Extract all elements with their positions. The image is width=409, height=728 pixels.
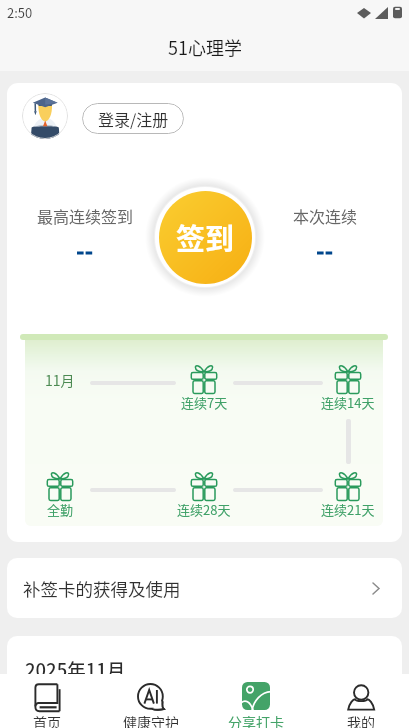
staticText: 首页 — [33, 712, 61, 728]
staticText: 连续28天 — [177, 500, 231, 519]
staticText: 登录/注册 — [98, 107, 169, 130]
staticText: 51心理学 — [168, 34, 242, 60]
button[interactable]: 连续7天 — [151, 360, 257, 412]
button[interactable]: 登录/注册 — [82, 103, 184, 134]
button[interactable]: 分享打卡 — [218, 674, 294, 728]
button[interactable]: 用户头像 — [22, 93, 68, 139]
staticText: 分享打卡 — [228, 712, 284, 728]
staticText: 连续21天 — [321, 500, 375, 519]
button[interactable]: 健康守护 — [113, 674, 189, 728]
staticText: 健康守护 — [123, 712, 179, 728]
button[interactable]: 签到 — [159, 191, 252, 284]
button[interactable]: 我的 — [323, 674, 399, 728]
staticText: 连续7天 — [181, 393, 228, 412]
staticText: 11月 — [45, 370, 75, 390]
button[interactable]: 首页 — [9, 674, 85, 728]
button[interactable]: 连续21天 — [295, 467, 383, 519]
staticText: 2025年11月 — [25, 656, 126, 683]
staticText: 全勤 — [47, 500, 74, 519]
staticText: 最高连续签到 — [37, 204, 134, 227]
button[interactable]: 连续14天 — [295, 360, 383, 412]
staticText: 我的 — [347, 712, 375, 728]
staticText: 本次连续 — [293, 204, 358, 227]
staticText: 连续14天 — [321, 393, 375, 412]
button[interactable]: 连续28天 — [151, 467, 257, 519]
button[interactable]: 全勤 — [25, 467, 113, 519]
staticText: 签到 — [176, 216, 235, 258]
button[interactable]: 补签卡的获得及使用 — [7, 558, 402, 618]
staticText: 2:50 — [7, 3, 33, 22]
staticText: 补签卡的获得及使用 — [23, 576, 181, 601]
